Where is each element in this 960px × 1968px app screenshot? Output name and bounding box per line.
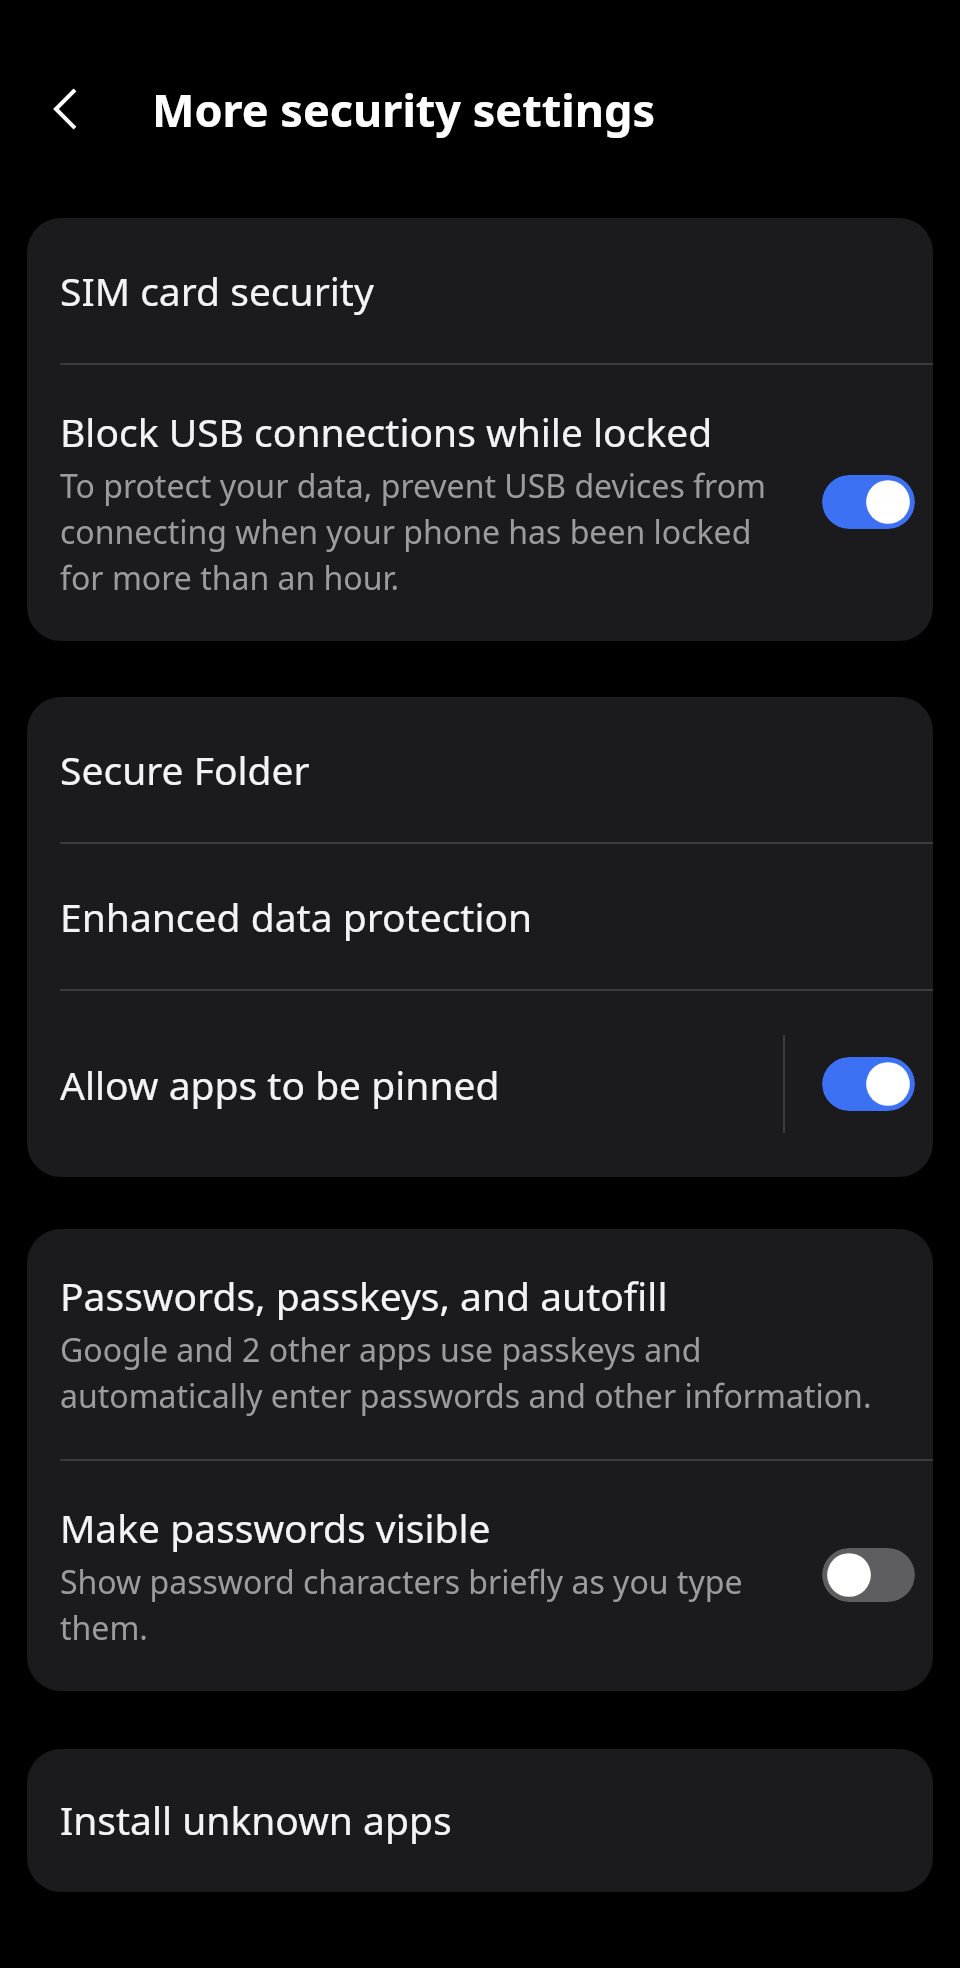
staticText: Make passwords visible (60, 1501, 491, 1554)
button[interactable]: Allow apps to be pinned (27, 991, 933, 1177)
staticText: Block USB connections while locked (60, 405, 713, 458)
button[interactable]: Install unknown apps (27, 1749, 933, 1892)
button[interactable]: Toggle on (822, 1057, 915, 1111)
button[interactable]: Block USB connections while locked (27, 365, 933, 641)
staticText: Allow apps to be pinned (60, 1058, 783, 1111)
button[interactable]: Enhanced data protection (27, 844, 933, 989)
staticText: More security settings (152, 79, 656, 140)
staticText: Passwords, passkeys, and autofill (60, 1269, 668, 1322)
button[interactable]: Secure Folder (27, 697, 933, 842)
staticText: Enhanced data protection (60, 890, 533, 943)
staticText: Install unknown apps (60, 1793, 452, 1846)
staticText: To protect your data, prevent USB device… (60, 464, 802, 599)
staticText: SIM card security (60, 264, 374, 317)
button[interactable]: SIM card security (27, 218, 933, 363)
staticText: Google and 2 other apps use passkeys and… (60, 1328, 900, 1417)
button[interactable]: Toggle on (822, 475, 915, 529)
button[interactable]: Passwords, passkeys, and autofill (27, 1229, 933, 1459)
staticText: Secure Folder (60, 743, 310, 796)
button[interactable]: Navigate up (28, 71, 104, 147)
button[interactable]: Toggle off (822, 1548, 915, 1602)
staticText: Show password characters briefly as you … (60, 1560, 802, 1649)
button[interactable]: Make passwords visible (27, 1461, 933, 1691)
